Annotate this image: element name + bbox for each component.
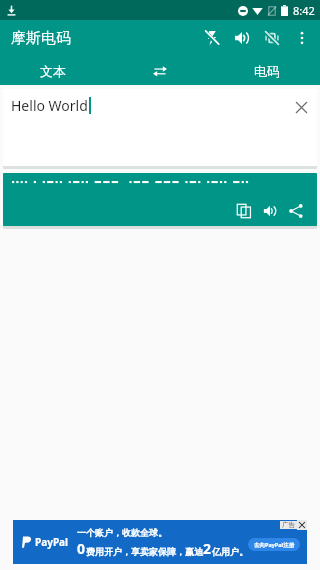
button[interactable]: Hello World <box>3 89 317 166</box>
staticText: 文本 <box>40 63 66 79</box>
staticText: 2 <box>203 539 212 558</box>
button[interactable]: Play sound <box>257 198 283 224</box>
button[interactable]: Vibration off <box>257 23 287 53</box>
staticText: 电码 <box>254 63 280 79</box>
staticText: 去向PayPal注册 <box>254 541 295 549</box>
staticText: 0 <box>77 539 86 558</box>
staticText: 费用开户，享卖家保障，赢迪 <box>86 546 203 557</box>
button[interactable]: Copy <box>231 198 257 224</box>
staticText: 亿用户。 <box>212 546 248 557</box>
staticText: 一个账户，收款全球。 <box>77 527 167 538</box>
button[interactable]: Flash off <box>197 23 227 53</box>
button[interactable]: Clear text <box>290 96 312 118</box>
button[interactable]: 电码 <box>213 56 320 85</box>
staticText: 广告 <box>282 521 295 529</box>
button[interactable]: Swap direction <box>106 56 213 85</box>
button[interactable]: 文本 <box>0 56 106 85</box>
button[interactable]: More options <box>287 23 317 53</box>
button[interactable]: PayPal advertisement <box>13 520 307 564</box>
staticText: PayPal <box>35 535 69 549</box>
staticText: Hello World <box>11 96 88 115</box>
staticText: 8:42 <box>293 3 315 18</box>
button[interactable]: Sound <box>227 23 257 53</box>
button[interactable]: 去向PayPal注册 <box>248 538 300 551</box>
button[interactable]: Copy <box>3 173 317 226</box>
staticText: 摩斯电码 <box>11 29 71 48</box>
button[interactable]: Share <box>283 198 309 224</box>
button[interactable]: Close ad <box>297 520 307 530</box>
